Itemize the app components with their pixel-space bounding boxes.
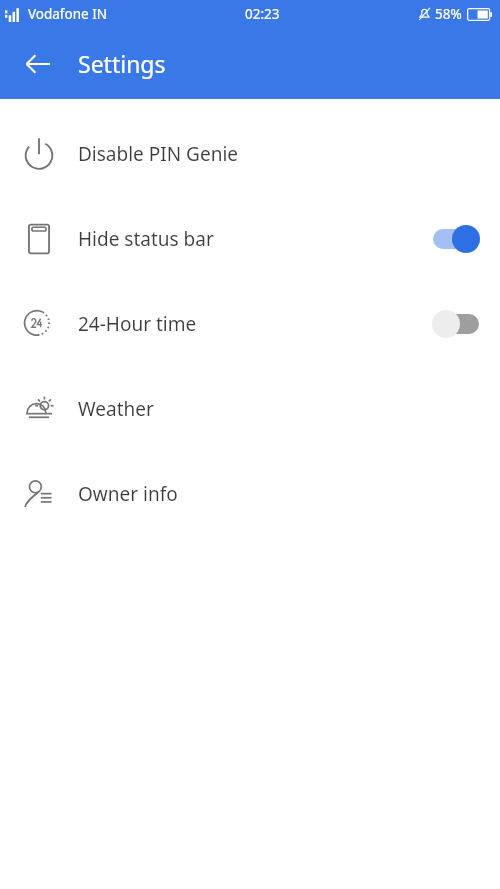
staticText: 24-Hour time [78, 311, 197, 337]
staticText: Disable PIN Genie [78, 141, 238, 167]
staticText: 02:23 [245, 5, 280, 23]
button[interactable]: Weather [0, 366, 500, 451]
button[interactable]: Owner info [0, 451, 500, 536]
staticText: Owner info [78, 481, 178, 507]
staticText: Vodafone IN [28, 5, 107, 23]
button[interactable]: 24-Hour time [0, 281, 500, 366]
button[interactable]: Back [14, 40, 62, 88]
button[interactable]: 24-Hour time off [428, 306, 484, 342]
button[interactable]: Disable PIN Genie [0, 111, 500, 196]
staticText: 58% [435, 5, 462, 23]
button[interactable]: Hide status bar [0, 196, 500, 281]
staticText: Settings [78, 48, 166, 79]
button[interactable]: Hide status bar on [428, 221, 484, 257]
staticText: Weather [78, 396, 154, 422]
staticText: Hide status bar [78, 226, 214, 252]
